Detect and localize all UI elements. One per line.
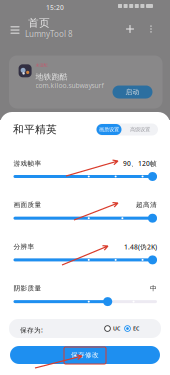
staticText: 超高清 [136,201,157,209]
staticText: com.kiloo.subwaysurf [35,81,103,90]
button[interactable]: 画质设置 [96,124,121,135]
button[interactable]: More options [146,23,156,35]
staticText: 保存修改 [71,351,99,359]
staticText: 15:20 [46,3,64,12]
staticText: 画面质量 [13,201,41,209]
staticText: 首页 [28,16,50,30]
staticText: 90、120帧 [123,159,157,168]
staticText: LumnyTool 8 [25,28,73,39]
staticText: 保存为: [20,325,43,334]
staticText: 和平精英 [13,123,57,136]
staticText: 启动 [125,88,139,96]
staticText: 高级设置 [130,126,150,133]
staticText: 游戏帧率 [13,159,41,167]
button[interactable]: EC [124,325,139,332]
staticText: 地铁跑酷 [35,72,67,82]
staticText: EC [133,325,139,332]
staticText: 1.48(伪2K) [124,242,157,251]
button[interactable]: 启动 [112,85,152,98]
staticText: 画质设置 [99,126,119,133]
button[interactable]: 保存修改 [10,346,160,364]
staticText: 阴影质量 [13,284,41,292]
staticText: 中 [150,284,157,292]
button[interactable]: Menu [8,23,22,37]
staticText: UC [113,325,120,332]
button[interactable]: UC [104,325,120,332]
staticText: 未适配 [35,63,47,68]
button[interactable]: Add [124,23,136,35]
button[interactable]: 高级设置 [125,124,155,135]
staticText: 分辨率 [13,243,34,251]
